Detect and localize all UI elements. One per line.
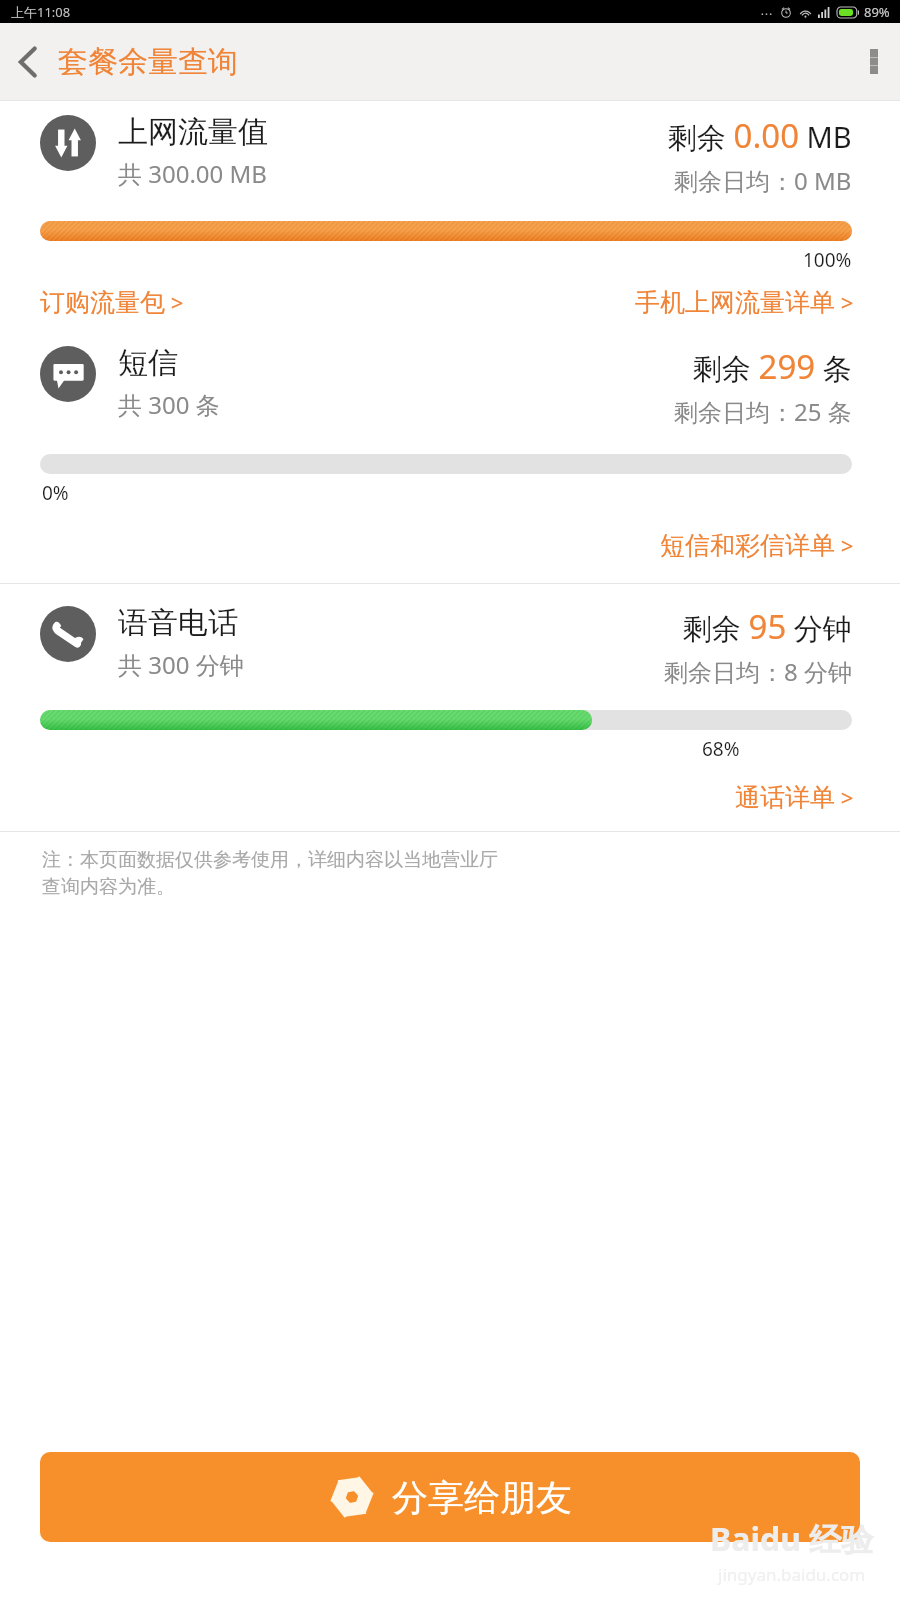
- staticText: 注：本页面数据仅供参考使用，详细内容以当地营业厅: [42, 848, 498, 872]
- button[interactable]: 短信: [0, 344, 900, 428]
- staticText: 剩余日均：8 分钟: [664, 655, 852, 688]
- staticText: 0%: [42, 480, 69, 506]
- staticText: 手机上网流量详单 >: [635, 287, 854, 318]
- staticText: 短信: [118, 344, 178, 382]
- staticText: 剩余 0.00 MB: [668, 113, 852, 158]
- staticText: 剩余 299 条: [693, 344, 852, 389]
- staticText: 剩余日均：0 MB: [674, 164, 852, 197]
- button[interactable]: 短信和彩信详单 >: [660, 530, 854, 561]
- button[interactable]: 通话详单 >: [735, 782, 854, 813]
- staticText: 语音电话: [118, 604, 238, 642]
- staticText: 上网流量值: [118, 113, 268, 151]
- staticText: 通话详单 >: [735, 782, 854, 813]
- staticText: 剩余 95 分钟: [683, 604, 852, 649]
- staticText: 上午11:08: [11, 3, 71, 21]
- button[interactable]: 分享给朋友: [40, 1452, 860, 1542]
- button[interactable]: 上网流量值: [0, 113, 900, 197]
- staticText: Baidu 经验: [710, 1517, 874, 1561]
- staticText: 89%: [864, 3, 890, 21]
- staticText: 订购流量包 >: [40, 287, 184, 318]
- staticText: 共 300 分钟: [118, 648, 244, 681]
- button[interactable]: 语音电话: [0, 604, 900, 688]
- button[interactable]: 手机上网流量详单 >: [635, 287, 854, 318]
- staticText: 剩余日均：25 条: [674, 395, 852, 428]
- staticText: 100%: [803, 247, 852, 273]
- staticText: 共 300.00 MB: [118, 157, 267, 190]
- button[interactable]: More options: [848, 35, 900, 88]
- staticText: jingyan.baidu.com: [718, 1563, 866, 1586]
- other: Back: [16, 45, 40, 79]
- button[interactable]: Back: [0, 43, 248, 81]
- button[interactable]: 订购流量包 >: [40, 287, 184, 318]
- staticText: 分享给朋友: [392, 1475, 572, 1520]
- staticText: 查询内容为准。: [42, 875, 175, 899]
- staticText: 68%: [702, 736, 740, 762]
- staticText: 短信和彩信详单 >: [660, 530, 854, 561]
- staticText: 套餐余量查询: [58, 43, 238, 81]
- staticText: 共 300 条: [118, 388, 220, 421]
